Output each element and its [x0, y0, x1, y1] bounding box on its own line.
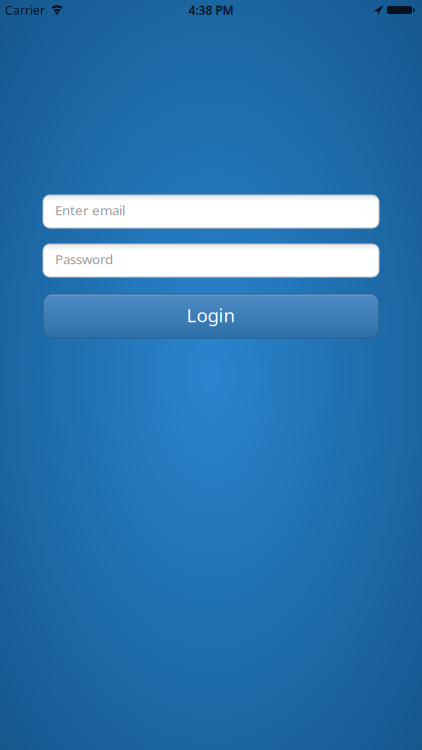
staticText: Login: [186, 303, 235, 327]
staticText: Password: [55, 250, 113, 268]
staticText: Carrier: [5, 2, 45, 18]
button[interactable]: Login: [43, 294, 379, 338]
button[interactable]: Password: [43, 244, 379, 277]
staticText: Enter email: [55, 201, 125, 219]
staticText: 4:38 PM: [188, 2, 233, 18]
button[interactable]: Enter email: [43, 195, 379, 228]
